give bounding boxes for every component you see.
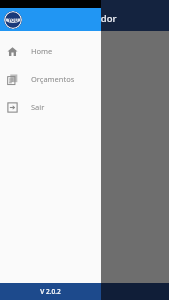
staticText: Home: [31, 46, 53, 56]
staticText: YOU: [8, 17, 18, 23]
button[interactable]: App logo: [4, 11, 22, 29]
staticText: Simulador: [70, 12, 117, 25]
other: Home: [7, 46, 18, 57]
button[interactable]: Home: [0, 41, 101, 61]
staticText: V 2.0.2: [40, 287, 61, 296]
staticText: Orçamentos: [31, 74, 75, 84]
other: Orçamentos: [7, 74, 18, 85]
button[interactable]: Orçamentos: [0, 69, 101, 89]
staticText: Sair: [31, 102, 45, 112]
button[interactable]: Sair: [0, 97, 101, 117]
other: Sair: [7, 102, 18, 113]
